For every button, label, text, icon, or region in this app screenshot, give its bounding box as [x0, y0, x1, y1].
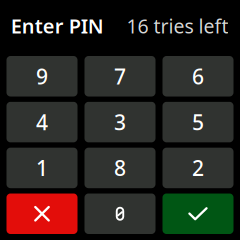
staticText: Enter PIN: [11, 12, 104, 39]
staticText: 2: [192, 154, 204, 182]
button[interactable]: 4: [6, 102, 77, 142]
button[interactable]: 5: [162, 102, 233, 142]
button[interactable]: 6: [162, 56, 233, 96]
staticText: 1: [36, 154, 48, 182]
button[interactable]: 8: [84, 148, 155, 188]
staticText: 4: [36, 108, 48, 136]
staticText: 9: [36, 62, 48, 91]
button[interactable]: 7: [84, 56, 155, 96]
staticText: 3: [114, 108, 126, 136]
button[interactable]: Cancel: [6, 193, 77, 234]
button[interactable]: 9: [6, 56, 77, 96]
staticText: 16 tries left: [126, 13, 228, 39]
staticText: 5: [192, 108, 204, 136]
staticText: 7: [114, 62, 126, 91]
button[interactable]: Zero: [84, 193, 155, 234]
button[interactable]: Confirm: [162, 193, 233, 234]
button[interactable]: 1: [6, 148, 77, 188]
button[interactable]: 3: [84, 102, 155, 142]
button[interactable]: 2: [162, 148, 233, 188]
staticText: 6: [192, 62, 204, 91]
staticText: 8: [114, 154, 126, 182]
